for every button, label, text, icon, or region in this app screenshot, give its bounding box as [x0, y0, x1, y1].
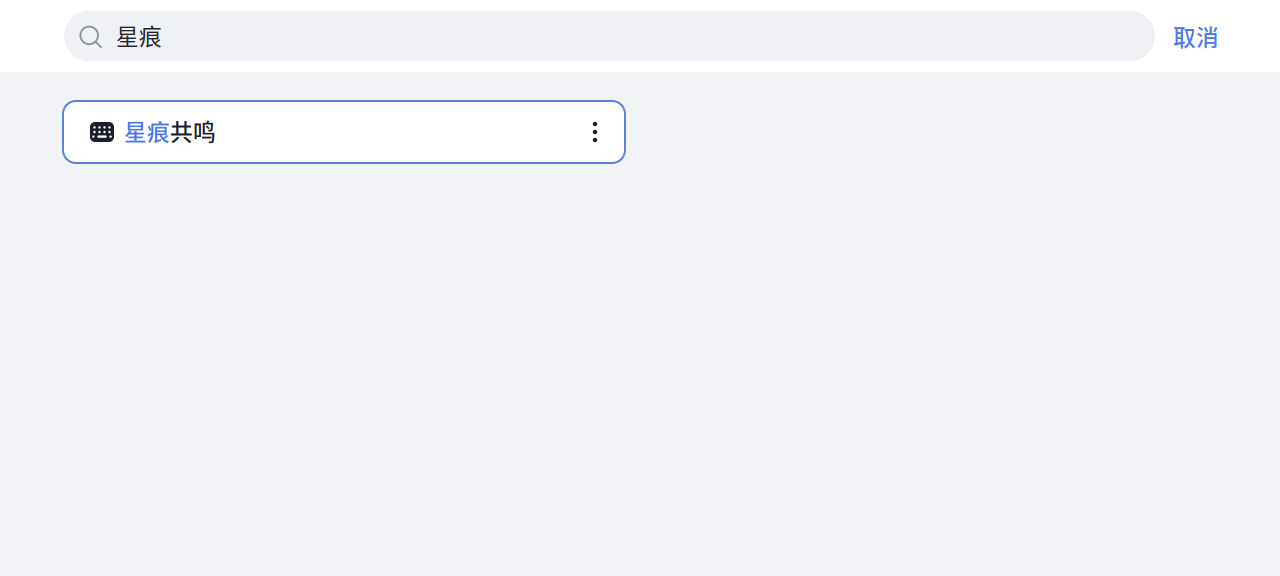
button[interactable]: 星痕: [64, 10, 1155, 61]
staticText: 星痕: [124, 114, 170, 147]
button[interactable]: More options: [584, 121, 606, 143]
button[interactable]: 星痕: [63, 101, 625, 163]
staticText: 取消: [1173, 20, 1219, 52]
staticText: 共鸣: [170, 114, 216, 147]
staticText: 星痕: [116, 19, 162, 51]
button[interactable]: 取消: [1155, 10, 1237, 61]
